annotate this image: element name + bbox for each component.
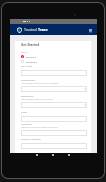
button[interactable]: Business xyxy=(21,55,87,58)
staticText: Trace xyxy=(38,27,48,32)
button[interactable] xyxy=(21,86,87,92)
staticText: Password xyxy=(21,123,32,126)
button[interactable] xyxy=(21,70,87,76)
staticText: Start typing to search for a person xyxy=(21,98,54,101)
staticText: Confirm Password xyxy=(21,138,41,141)
staticText: Trusted xyxy=(24,27,38,32)
staticText: Password must be at least 8 characters xyxy=(21,126,58,129)
staticText: Start typing to search for your company xyxy=(21,82,59,85)
button[interactable] xyxy=(21,116,87,122)
staticText: I'm a ... xyxy=(21,50,30,53)
button[interactable]: Open navigation menu xyxy=(87,27,93,33)
staticText: Full Name xyxy=(21,65,32,68)
staticText: Business xyxy=(26,55,36,58)
button[interactable] xyxy=(21,130,87,136)
staticText: Organisation xyxy=(21,79,36,82)
button[interactable]: Individual xyxy=(21,60,87,63)
staticText: Referred by xyxy=(21,95,34,98)
staticText: Get Started xyxy=(21,43,40,47)
staticText: Email xyxy=(21,111,27,114)
staticText: Individual xyxy=(26,60,38,63)
button[interactable] xyxy=(21,102,87,108)
button[interactable] xyxy=(21,143,87,149)
